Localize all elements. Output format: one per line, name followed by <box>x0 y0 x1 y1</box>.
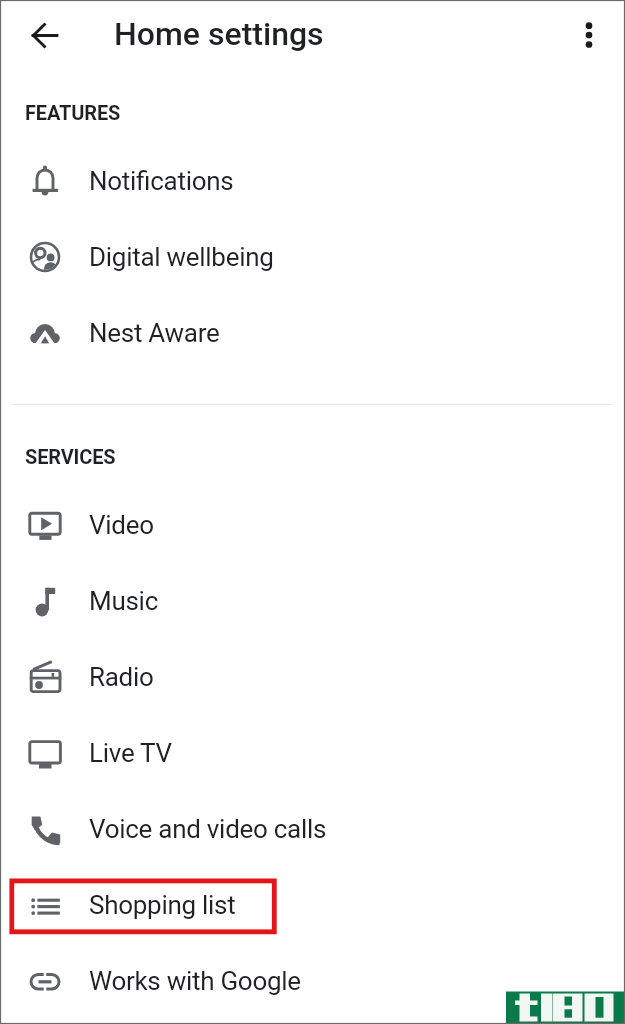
staticText: Radio <box>89 662 154 692</box>
staticText: Works with Google <box>89 966 301 996</box>
button[interactable]: Voice and video calls <box>0 791 625 867</box>
button[interactable]: Music <box>0 563 625 639</box>
staticText: Music <box>89 586 158 616</box>
button[interactable]: More options <box>565 11 613 59</box>
button[interactable]: Works with Google <box>0 943 625 1019</box>
button[interactable]: Radio <box>0 639 625 715</box>
button[interactable]: Back <box>20 11 69 60</box>
button[interactable]: Digital wellbeing <box>0 219 625 295</box>
button[interactable]: Live TV <box>0 715 625 791</box>
button[interactable]: Video <box>0 487 625 563</box>
staticText: Nest Aware <box>89 318 220 348</box>
button[interactable]: Notifications <box>0 143 625 219</box>
staticText: Voice and video calls <box>89 814 327 844</box>
staticText: FEATURES <box>25 101 121 124</box>
staticText: Video <box>89 510 154 540</box>
staticText: Shopping list <box>89 890 236 920</box>
staticText: Home settings <box>114 15 324 53</box>
staticText: Digital wellbeing <box>89 242 274 272</box>
staticText: Live TV <box>89 738 172 768</box>
button[interactable]: Nest Aware <box>0 295 625 371</box>
staticText: Notifications <box>89 166 234 196</box>
staticText: SERVICES <box>25 445 116 468</box>
button[interactable]: Shopping list <box>0 867 625 943</box>
